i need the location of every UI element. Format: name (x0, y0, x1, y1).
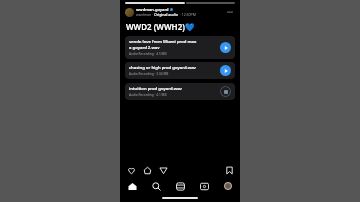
button[interactable]: Profile (220, 178, 236, 194)
staticText: chasing ur high prod goyard.wav (129, 65, 196, 71)
button[interactable]: More options (225, 7, 235, 17)
staticText: wwdman · (136, 12, 154, 17)
button[interactable]: Shop (196, 178, 212, 194)
button[interactable]: Play (220, 42, 231, 53)
button[interactable]: Play (220, 65, 231, 76)
button[interactable]: Share (157, 164, 169, 176)
button[interactable]: Pause (220, 86, 231, 97)
button[interactable]: intuition prod goyard.wav (125, 83, 235, 100)
button[interactable]: Home (124, 178, 140, 194)
button[interactable]: Reels (172, 178, 188, 194)
staticText: · 12:30PM (178, 12, 196, 17)
staticText: wwdman.goyard (136, 7, 169, 12)
staticText: intuition prod goyard.wav (129, 86, 182, 92)
staticText: a goyard 2.wav (129, 45, 160, 51)
staticText: Original audio (154, 12, 178, 17)
button[interactable]: Like (125, 164, 137, 176)
staticText: Audio Recording · 3.04 MB (129, 72, 169, 76)
staticText: sendn love from Miami prod max (129, 39, 197, 45)
button[interactable]: Comment (141, 164, 153, 176)
button[interactable]: chasing ur high prod goyard.wav (125, 62, 235, 79)
button[interactable]: sendn love from Miami prod max (125, 36, 235, 59)
staticText: WWD2 (WWH2)💙 (126, 21, 195, 32)
button[interactable]: Search (148, 178, 164, 194)
staticText: Audio Recording · 4.1 MB (129, 93, 167, 97)
button[interactable]: Save (223, 164, 235, 176)
staticText: Audio Recording · 4.5 MB (129, 52, 167, 56)
